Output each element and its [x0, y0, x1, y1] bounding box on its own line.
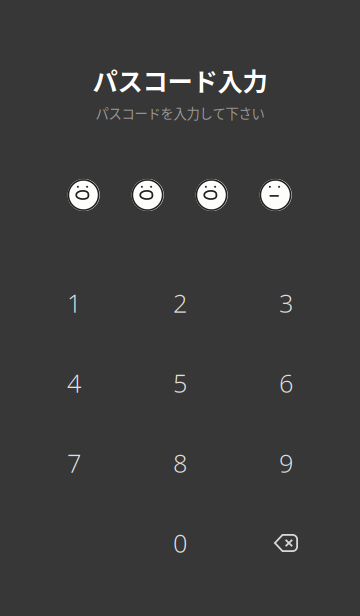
- staticText: 8: [173, 446, 187, 480]
- button[interactable]: 2: [127, 263, 233, 343]
- staticText: パスコードを入力して下さい: [95, 103, 264, 123]
- staticText: 7: [67, 446, 81, 480]
- button[interactable]: Delete: [233, 503, 339, 583]
- button[interactable]: 3: [233, 263, 339, 343]
- staticText: 2: [173, 286, 187, 320]
- button[interactable]: 0: [127, 503, 233, 583]
- staticText: 3: [279, 286, 293, 320]
- button[interactable]: 9: [233, 423, 339, 503]
- button[interactable]: 5: [127, 343, 233, 423]
- staticText: パスコード入力: [92, 62, 267, 98]
- button[interactable]: 4: [21, 343, 127, 423]
- staticText: 6: [279, 366, 293, 400]
- button[interactable]: 7: [21, 423, 127, 503]
- staticText: 0: [173, 526, 187, 560]
- staticText: 4: [67, 366, 81, 400]
- button[interactable]: 6: [233, 343, 339, 423]
- staticText: 5: [173, 366, 187, 400]
- staticText: 9: [279, 446, 293, 480]
- button[interactable]: 8: [127, 423, 233, 503]
- staticText: 1: [67, 286, 81, 320]
- button[interactable]: 1: [21, 263, 127, 343]
